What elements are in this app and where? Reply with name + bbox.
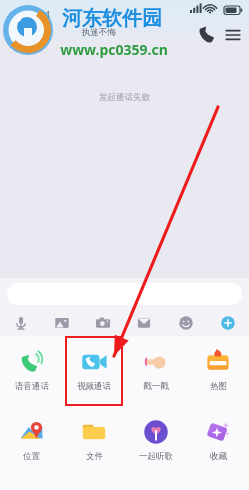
staticText: 视频通话 — [77, 381, 111, 392]
button[interactable]: 一起听歌 — [125, 406, 187, 476]
button[interactable]: 收藏 — [187, 406, 249, 476]
staticText: 一起听歌 — [139, 451, 173, 462]
staticText: www.pc0359.cn — [60, 40, 168, 59]
staticText: 16:04 — [28, 9, 50, 21]
button[interactable]: 热图 — [187, 336, 249, 406]
staticText: 收藏 — [210, 451, 227, 462]
button[interactable]: Gallery — [41, 310, 82, 336]
button[interactable]: 戳一戳 — [125, 336, 187, 406]
button[interactable]: Message input — [7, 283, 242, 305]
button[interactable]: Red packet — [123, 310, 165, 336]
staticText: 执迷不悔 — [82, 27, 116, 38]
staticText: 热图 — [210, 381, 227, 392]
button[interactable]: 位置 — [0, 406, 63, 476]
staticText: 语音通话 — [15, 381, 49, 392]
staticText: 戳一戳 — [143, 381, 169, 392]
button[interactable]: Voice — [0, 310, 41, 336]
button[interactable]: More — [207, 310, 249, 336]
button[interactable]: Call — [196, 24, 218, 46]
button[interactable]: Emoji — [165, 310, 207, 336]
staticText: 发起通话失败 — [99, 92, 150, 103]
staticText: 文件 — [86, 451, 103, 462]
button[interactable]: 语音通话 — [0, 336, 63, 406]
button[interactable]: Menu — [222, 24, 244, 46]
button[interactable]: Camera — [82, 310, 123, 336]
button[interactable]: 文件 — [63, 406, 125, 476]
staticText: 位置 — [23, 451, 40, 462]
button[interactable]: 视频通话 — [63, 336, 125, 406]
staticText: 河东软件园 — [62, 6, 162, 31]
